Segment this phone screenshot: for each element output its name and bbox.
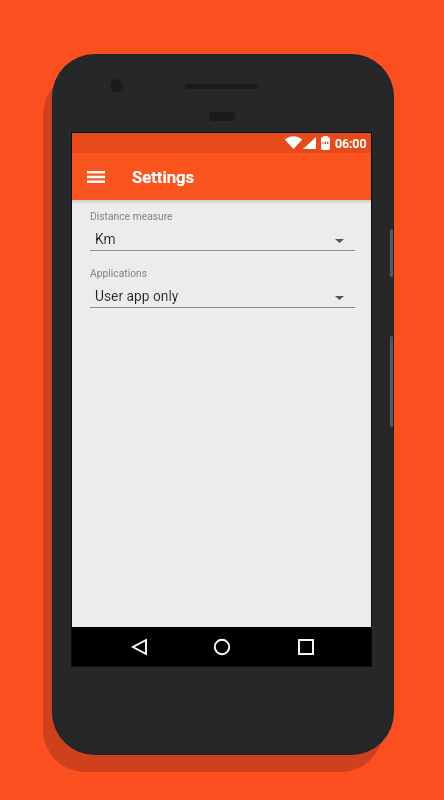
button[interactable]: Distance measure [90,210,355,251]
button[interactable]: Back [118,628,156,666]
staticText: User app only [95,288,346,304]
button[interactable]: Applications [90,267,355,308]
button[interactable]: Recent apps [287,628,325,666]
staticText: Km [95,231,346,247]
staticText: Applications [90,267,148,279]
staticText: Distance measure [90,210,173,222]
button[interactable]: Open navigation menu [78,159,114,195]
button[interactable]: Home [203,628,241,666]
staticText: Settings [132,168,195,188]
staticText: 06:00 [335,136,367,151]
